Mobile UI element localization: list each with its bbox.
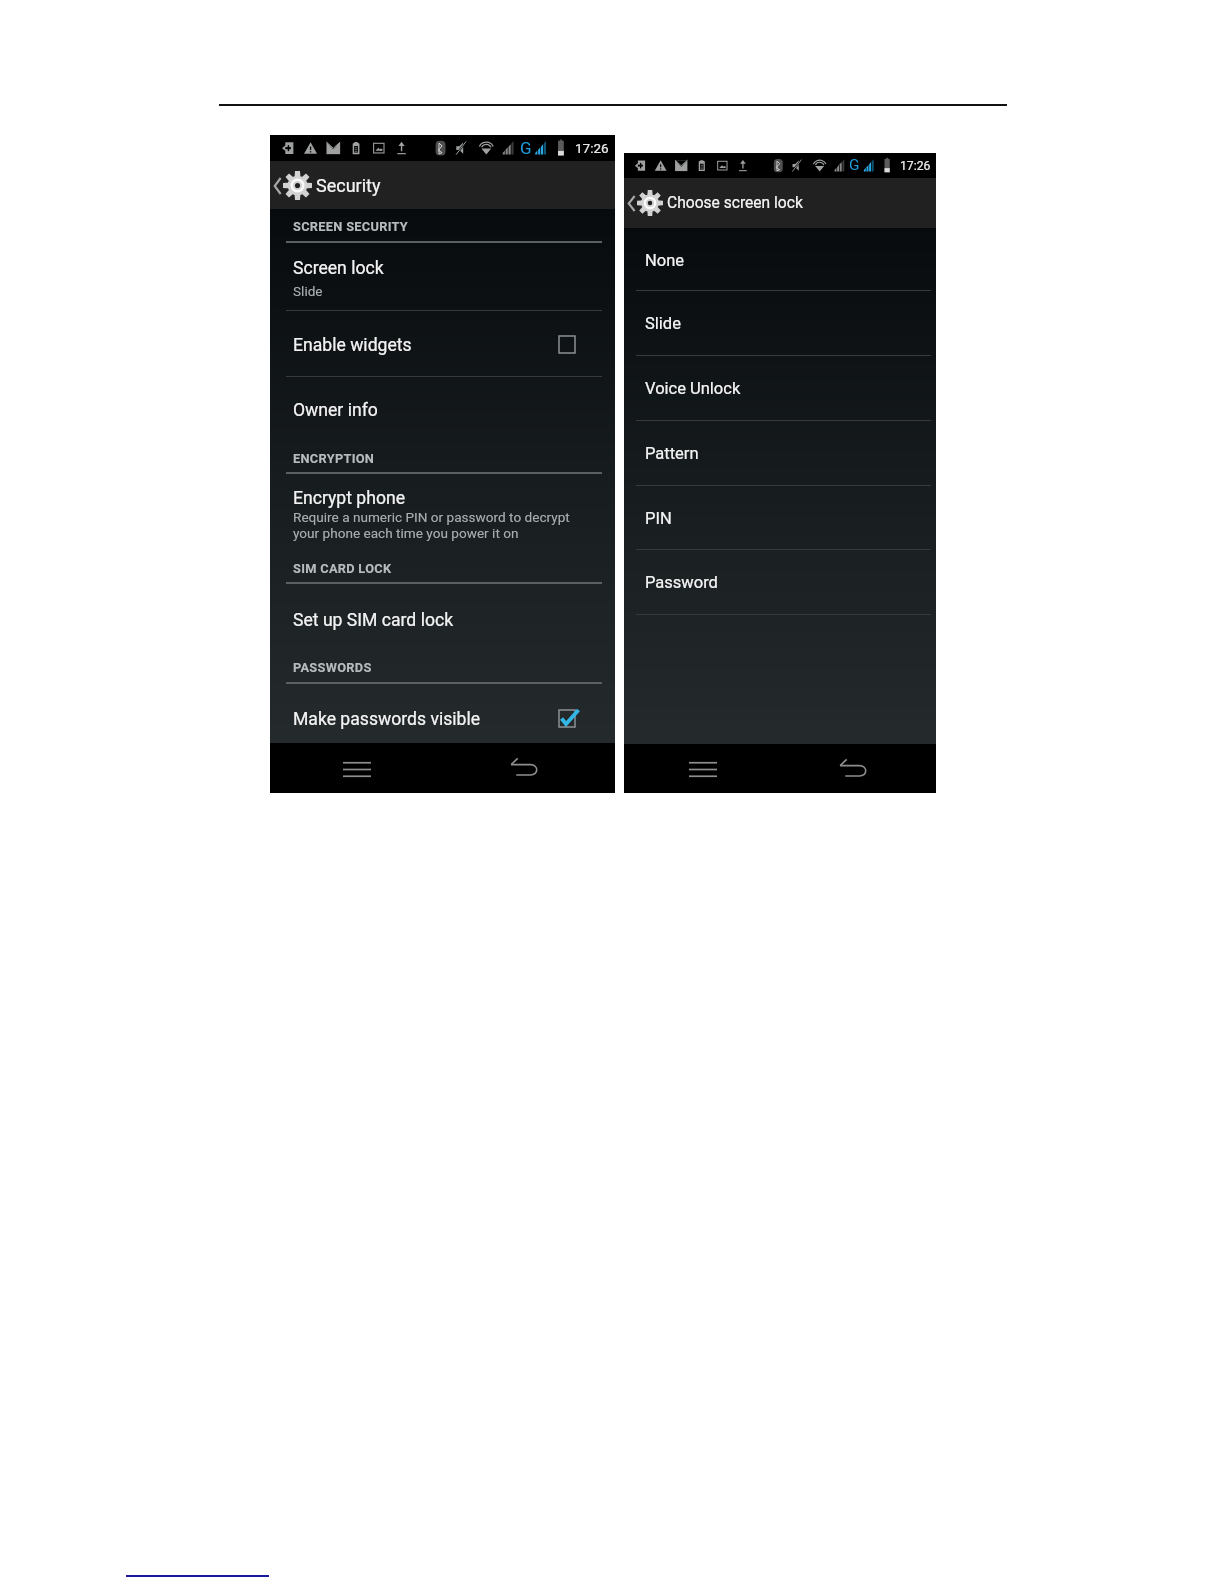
staticText: Encrypt phone — [293, 488, 406, 509]
staticText: Slide — [645, 314, 681, 333]
button[interactable]: Enable widgets — [270, 310, 615, 376]
staticText: None — [645, 251, 685, 270]
staticText: Password — [645, 573, 718, 592]
staticText: Slide — [293, 283, 323, 299]
button[interactable]: Pattern — [624, 420, 936, 485]
staticText: SCREEN SECURITY — [293, 219, 409, 234]
staticText: Security — [316, 175, 381, 196]
button[interactable]: Enabled — [559, 710, 575, 727]
staticText: Screen lock — [293, 258, 384, 279]
staticText: 17:26 — [900, 159, 931, 173]
staticText: ENCRYPTION — [293, 451, 375, 466]
staticText: G — [520, 138, 532, 158]
button[interactable]: Make passwords visible — [270, 683, 615, 743]
staticText: Require a numeric PIN or password to dec… — [293, 509, 570, 525]
button[interactable]: Slide — [624, 290, 936, 355]
staticText: Enable widgets — [293, 335, 412, 356]
button[interactable]: Back — [509, 758, 539, 780]
button[interactable]: Owner info — [270, 376, 615, 440]
button[interactable]: Recent apps — [689, 762, 717, 777]
staticText: Choose screen lock — [667, 194, 803, 212]
button[interactable]: Recent apps — [343, 762, 371, 777]
button[interactable]: Screen lock — [270, 242, 615, 310]
button[interactable]: PIN — [624, 485, 936, 550]
button[interactable]: Back — [838, 759, 868, 781]
button[interactable]: Set up SIM card lock — [270, 583, 615, 650]
staticText: PIN — [645, 509, 672, 528]
staticText: G — [849, 156, 860, 174]
staticText: Voice Unlock — [645, 379, 741, 398]
button[interactable]: None — [624, 228, 936, 290]
button[interactable]: Encrypt phone — [270, 473, 615, 550]
staticText: Pattern — [645, 444, 699, 463]
staticText: Owner info — [293, 400, 378, 421]
staticText: 17:26 — [575, 140, 609, 156]
staticText: Make passwords visible — [293, 709, 481, 730]
button[interactable]: Password — [624, 549, 936, 614]
staticText: Set up SIM card lock — [293, 610, 454, 631]
button[interactable]: Navigate up — [270, 161, 615, 209]
button[interactable]: Navigate up — [624, 178, 936, 228]
button[interactable]: Disabled — [559, 336, 575, 353]
button[interactable]: Voice Unlock — [624, 355, 936, 420]
staticText: SIM CARD LOCK — [293, 561, 392, 576]
staticText: PASSWORDS — [293, 660, 372, 675]
staticText: your phone each time you power it on — [293, 525, 519, 541]
